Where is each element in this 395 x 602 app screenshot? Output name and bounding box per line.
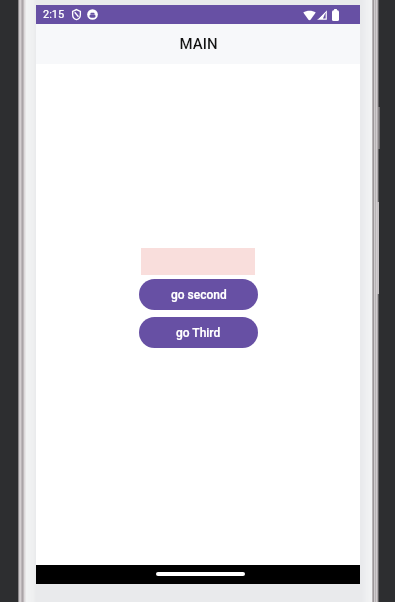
staticText: 2:15 xyxy=(43,8,65,21)
staticText: MAIN xyxy=(179,35,218,53)
button[interactable]: go Third xyxy=(139,317,258,348)
button[interactable]: go second xyxy=(139,279,258,310)
staticText: go Third xyxy=(176,326,221,340)
button[interactable]: Home xyxy=(156,572,245,576)
staticText: go second xyxy=(171,288,227,302)
